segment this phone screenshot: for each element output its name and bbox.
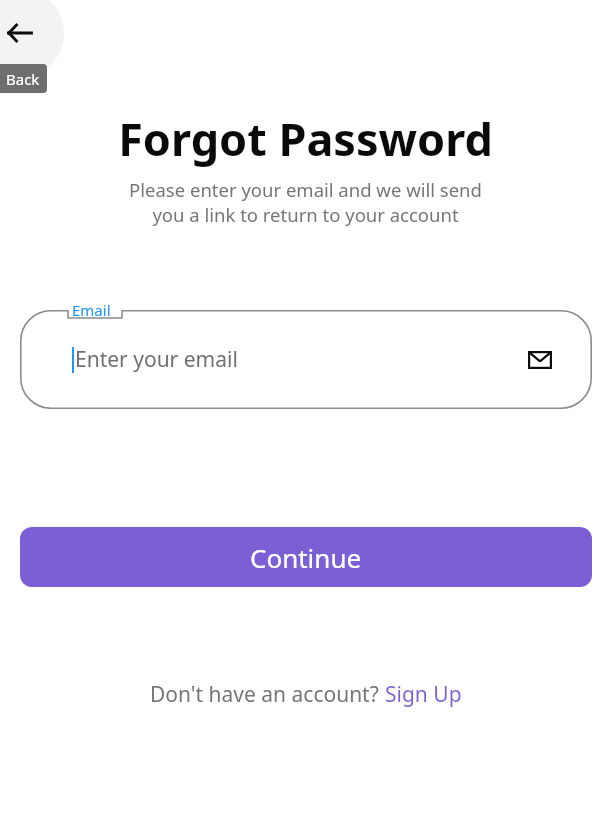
button[interactable]: Email — [20, 310, 592, 409]
button[interactable]: Continue — [20, 527, 592, 587]
staticText: Please enter your email and we will send… — [129, 177, 482, 228]
staticText: Don't have an account? — [150, 680, 385, 709]
staticText: Back — [6, 69, 40, 89]
staticText: Email — [72, 300, 111, 320]
button[interactable]: Email — [524, 344, 556, 376]
staticText: Sign Up — [385, 680, 462, 709]
staticText: Continue — [250, 540, 362, 575]
button[interactable]: Sign Up — [385, 680, 462, 709]
button[interactable]: Back — [0, 0, 64, 77]
staticText: Enter your email — [75, 345, 238, 374]
staticText: Forgot Password — [118, 108, 493, 169]
